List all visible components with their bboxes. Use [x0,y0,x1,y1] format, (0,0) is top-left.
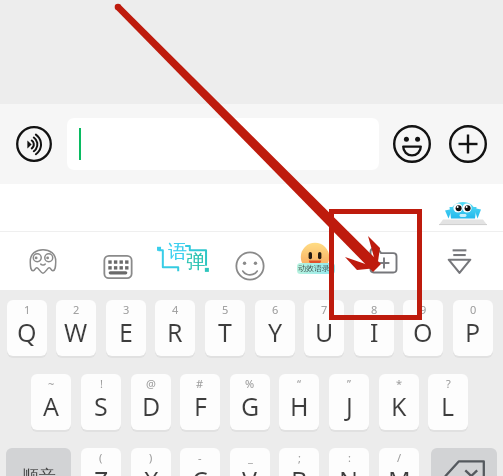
staticText: ) [149,450,153,465]
staticText: ; [298,450,301,465]
button[interactable]: ~ [31,374,71,430]
button[interactable]: Sticker [229,245,271,287]
button[interactable] [67,118,379,170]
staticText: H [290,389,309,423]
staticText: @ [146,376,156,391]
button[interactable]: 5 [205,300,245,356]
staticText: 1 [24,302,31,317]
button[interactable]: 顺音 [6,448,71,476]
button[interactable]: 7 [304,300,344,356]
staticText: 9 [420,302,427,317]
staticText: 8 [371,302,378,317]
button[interactable]: 0 [453,300,493,356]
button[interactable]: Voice bullet [155,240,213,274]
staticText: ( [99,450,103,465]
staticText: # [196,376,204,391]
staticText: 顺音 [22,466,56,476]
staticText: 动效语录 [298,263,330,273]
staticText: / [397,450,402,465]
staticText: 6 [272,302,279,317]
staticText: T [218,315,232,349]
staticText: 5 [222,302,229,317]
staticText: V [242,463,258,476]
staticText: : [348,450,351,465]
button[interactable]: Backspace [431,448,497,476]
button[interactable]: ? [428,374,468,430]
button[interactable]: ; [279,448,319,476]
staticText: % [245,376,255,391]
button[interactable]: Emoji [392,124,432,164]
staticText: 4 [172,302,179,317]
button[interactable]: “ [279,374,319,430]
button[interactable]: _ [230,448,270,476]
staticText: N [339,463,359,476]
staticText: I [370,315,379,349]
staticText: _ [248,450,253,465]
button[interactable]: * [379,374,419,430]
staticText: G [241,389,260,423]
staticText: ~ [48,376,55,391]
button[interactable]: Animated quotes [296,238,338,278]
staticText: J [346,389,353,423]
button[interactable]: % [230,374,270,430]
button[interactable]: @ [131,374,171,430]
button[interactable]: Hide keyboard [448,248,471,274]
staticText: F [194,389,207,423]
staticText: 7 [321,302,328,317]
button[interactable]: 8 [354,300,394,356]
staticText: 弹 [186,250,205,274]
button[interactable]: ” [329,374,369,430]
staticText: Z [94,463,109,476]
staticText: ? [446,376,451,391]
staticText: B [291,463,308,476]
staticText: R [167,315,183,349]
staticText: P [465,315,481,349]
staticText: ! [100,376,103,391]
staticText: S [94,389,108,423]
staticText: U [315,315,334,349]
staticText: K [391,389,407,423]
staticText: 3 [123,302,130,317]
button[interactable]: Keyboard [97,245,139,287]
button[interactable]: 2 [56,300,96,356]
staticText: 0 [470,302,477,317]
button[interactable]: - [180,448,220,476]
staticText: O [413,315,433,349]
button[interactable]: 6 [255,300,295,356]
staticText: Y [268,315,283,349]
staticText: D [142,389,161,423]
button[interactable]: More functions [448,124,488,164]
other: Mascot [438,194,488,230]
staticText: A [43,389,59,423]
staticText: L [441,389,455,423]
button[interactable]: 1 [7,300,47,356]
button[interactable]: Voice input [14,124,54,164]
staticText: C [192,463,208,476]
staticText: 2 [73,302,80,317]
staticText: M [388,463,411,476]
button[interactable]: 3 [106,300,146,356]
button[interactable]: Voice emoji [29,245,57,274]
staticText: - [198,450,202,465]
button[interactable]: : [329,448,369,476]
staticText: W [64,315,88,349]
staticText: X [144,463,159,476]
button[interactable]: ! [81,374,121,430]
button[interactable]: ( [81,448,121,476]
button[interactable]: 4 [155,300,195,356]
button[interactable]: ) [131,448,171,476]
button[interactable]: Add material [370,248,398,274]
button[interactable]: 9 [403,300,443,356]
button[interactable]: / [379,448,419,476]
staticText: “ [297,376,301,391]
button[interactable]: # [180,374,220,430]
staticText: Q [17,315,37,349]
staticText: 语 [168,240,187,264]
staticText: ” [347,376,351,391]
staticText: E [119,315,133,349]
staticText: * [396,376,403,391]
